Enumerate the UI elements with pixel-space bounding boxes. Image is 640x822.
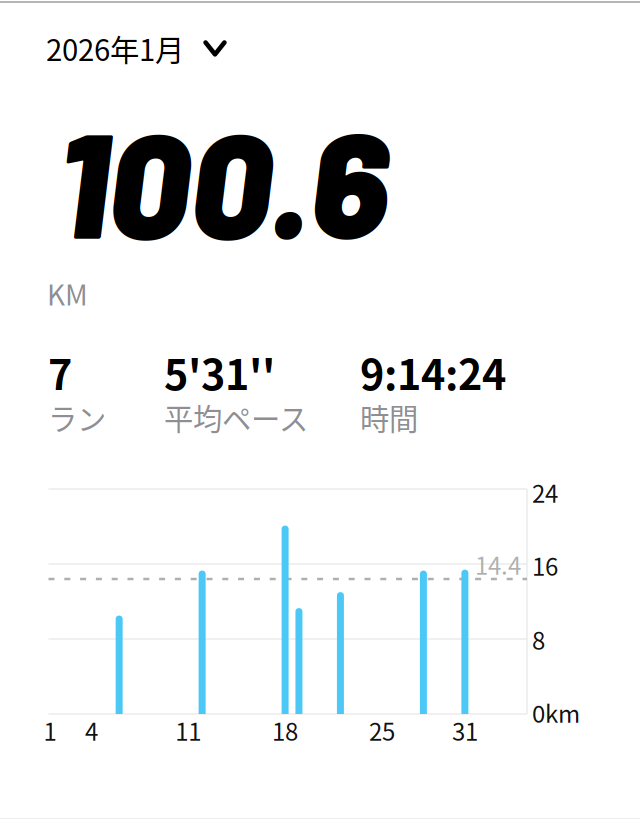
staticText: 100.6: [57, 92, 388, 268]
staticText: 16: [532, 548, 558, 583]
staticText: 7: [48, 342, 72, 402]
staticText: 18: [272, 713, 298, 748]
staticText: 25: [369, 713, 395, 748]
staticText: 8: [532, 622, 545, 657]
staticText: 31: [452, 713, 478, 748]
staticText: 時間: [360, 396, 418, 438]
staticText: 平均ペース: [164, 396, 308, 438]
staticText: 11: [175, 713, 201, 748]
staticText: 9:14:24: [360, 342, 506, 402]
staticText: 1: [43, 713, 56, 748]
staticText: 4: [85, 713, 98, 748]
staticText: 5'31'': [164, 342, 275, 402]
staticText: 2026年1月: [46, 27, 184, 69]
staticText: KM: [47, 273, 88, 313]
staticText: 24: [532, 475, 558, 510]
staticText: 14.4: [475, 547, 521, 582]
staticText: ラン: [48, 396, 106, 438]
staticText: 0km: [532, 695, 580, 730]
button[interactable]: 2026年1月: [46, 27, 227, 69]
